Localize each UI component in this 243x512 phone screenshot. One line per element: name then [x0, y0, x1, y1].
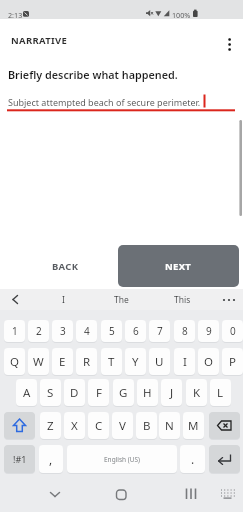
button[interactable]: , — [39, 445, 63, 473]
staticText: W — [33, 354, 44, 370]
button[interactable]: M — [183, 412, 204, 439]
staticText: U — [155, 354, 164, 370]
button[interactable]: X — [64, 412, 85, 439]
staticText: Briefly describe what happened. — [8, 67, 178, 82]
staticText: 2 — [36, 324, 42, 338]
button[interactable]: . — [180, 445, 205, 473]
button[interactable]: 3 — [52, 320, 73, 342]
button[interactable]: English (US) — [67, 445, 177, 473]
staticText: 0 — [230, 324, 236, 338]
button[interactable]: NEXT — [118, 245, 239, 287]
button[interactable]: E — [52, 348, 73, 375]
staticText: C — [95, 418, 103, 434]
staticText: Subject attempted beach of secure perime… — [8, 96, 201, 108]
button[interactable]: O — [198, 348, 219, 375]
staticText: J — [170, 385, 174, 401]
button[interactable]: A — [16, 379, 37, 406]
button[interactable]: C — [88, 412, 109, 439]
staticText: . — [191, 451, 195, 467]
button[interactable]: B — [136, 412, 157, 439]
staticText: A — [23, 385, 31, 401]
staticText: F — [96, 385, 102, 401]
button[interactable] — [215, 483, 239, 507]
staticText: 7 — [157, 324, 163, 338]
staticText: K — [193, 385, 201, 401]
button[interactable]: 6 — [125, 320, 146, 342]
staticText: This — [174, 294, 191, 306]
button[interactable] — [4, 412, 35, 439]
staticText: 5 — [109, 324, 115, 338]
button[interactable]: K — [186, 379, 207, 406]
button[interactable]: P — [222, 348, 243, 375]
button[interactable]: I — [58, 289, 68, 310]
button[interactable]: 9 — [198, 320, 219, 342]
staticText: Q — [10, 354, 19, 370]
staticText: D — [70, 385, 79, 401]
button[interactable] — [109, 483, 133, 507]
button[interactable] — [209, 445, 240, 473]
button[interactable]: N — [159, 412, 180, 439]
staticText: L — [217, 385, 224, 401]
staticText: !#1 — [13, 453, 27, 465]
staticText: 9 — [206, 324, 212, 338]
button[interactable]: G — [113, 379, 134, 406]
button[interactable]: T — [101, 348, 122, 375]
staticText: 3 — [60, 324, 66, 338]
staticText: BACK — [52, 260, 79, 273]
button[interactable]: J — [161, 379, 182, 406]
button[interactable] — [179, 483, 203, 507]
button[interactable]: U — [149, 348, 170, 375]
button[interactable]: Y — [125, 348, 146, 375]
staticText: O — [204, 354, 213, 370]
staticText: P — [229, 354, 236, 370]
staticText: 100% — [172, 10, 191, 20]
button[interactable]: 5 — [101, 320, 122, 342]
staticText: 8 — [182, 324, 188, 338]
staticText: NEXT — [165, 260, 192, 273]
button[interactable]: 4 — [76, 320, 97, 342]
staticText: H — [143, 385, 152, 401]
button[interactable]: The — [105, 289, 137, 310]
staticText: 4 — [84, 324, 90, 338]
button[interactable]: 0 — [222, 320, 243, 342]
staticText: The — [114, 294, 129, 306]
button[interactable]: 8 — [174, 320, 195, 342]
button[interactable]: 7 — [149, 320, 170, 342]
staticText: S — [47, 385, 54, 401]
staticText: Y — [132, 354, 139, 370]
staticText: E — [59, 354, 66, 370]
staticText: Z — [47, 418, 54, 434]
button[interactable] — [43, 483, 67, 507]
staticText: G — [119, 385, 128, 401]
button[interactable]: R — [76, 348, 97, 375]
button[interactable]: L — [210, 379, 231, 406]
button[interactable]: H — [137, 379, 158, 406]
staticText: N — [165, 418, 174, 434]
button[interactable]: F — [88, 379, 109, 406]
button[interactable]: V — [112, 412, 133, 439]
button[interactable]: 1 — [4, 320, 25, 342]
button[interactable] — [218, 24, 242, 58]
button[interactable] — [209, 412, 240, 439]
button[interactable]: S — [40, 379, 61, 406]
button[interactable]: W — [28, 348, 49, 375]
staticText: English (US) — [104, 455, 141, 464]
staticText: I — [183, 354, 187, 370]
staticText: I — [62, 294, 65, 306]
button[interactable]: Z — [40, 412, 61, 439]
staticText: 6 — [133, 324, 139, 338]
button[interactable]: 2 — [28, 320, 49, 342]
button[interactable]: Q — [4, 348, 25, 375]
button[interactable]: !#1 — [4, 445, 35, 473]
button[interactable]: I — [174, 348, 195, 375]
staticText: 1 — [12, 324, 18, 338]
staticText: NARRATIVE — [11, 34, 68, 47]
staticText: V — [119, 418, 126, 434]
staticText: M — [188, 418, 199, 434]
staticText: R — [83, 354, 91, 370]
button[interactable]: BACK — [25, 245, 105, 287]
staticText: X — [71, 418, 78, 434]
button[interactable]: D — [64, 379, 85, 406]
button[interactable]: This — [166, 289, 198, 310]
staticText: , — [49, 451, 53, 467]
